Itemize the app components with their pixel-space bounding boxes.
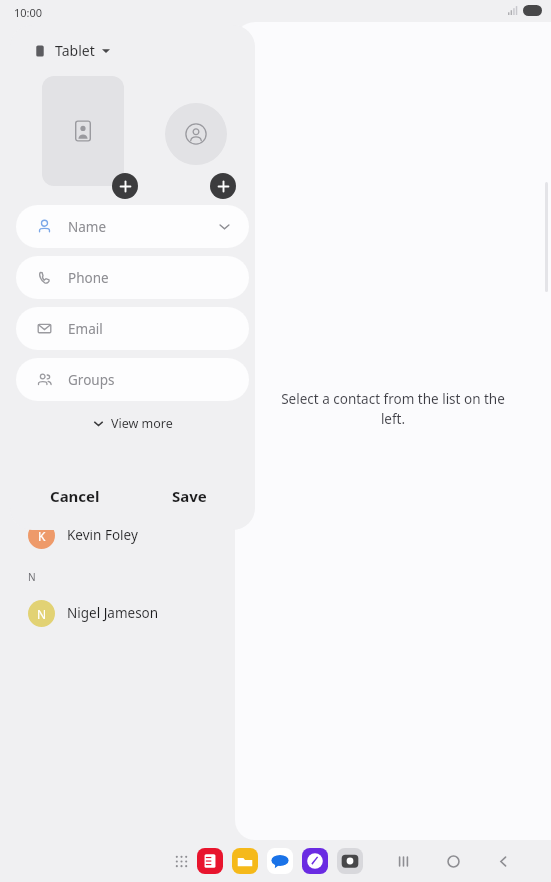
button[interactable]: Cancel <box>40 480 110 512</box>
button[interactable]: Add cover photo <box>112 173 138 199</box>
button[interactable]: Samsung Notes <box>197 848 223 874</box>
button[interactable]: View more <box>10 415 255 432</box>
button[interactable]: Internet <box>302 848 328 874</box>
button[interactable]: K <box>0 512 235 558</box>
button[interactable]: Add profile photo <box>210 173 236 199</box>
button[interactable]: Home <box>442 850 464 872</box>
button[interactable]: Save <box>162 480 217 512</box>
staticText: N <box>28 570 36 584</box>
button[interactable]: All apps <box>170 850 192 872</box>
button[interactable]: Tablet <box>32 37 112 64</box>
staticText: Phone <box>68 269 109 287</box>
staticText: Kevin Foley <box>67 526 138 544</box>
button[interactable]: Add cover photo <box>42 76 124 186</box>
staticText: Select a contact from the list on the le… <box>268 390 518 428</box>
button[interactable]: Back <box>492 850 514 872</box>
button[interactable]: Email <box>16 307 249 350</box>
button[interactable]: Camera <box>337 848 363 874</box>
button[interactable]: Name <box>16 205 249 248</box>
staticText: 10:00 <box>14 5 43 20</box>
button[interactable]: Messages <box>267 848 293 874</box>
staticText: Tablet <box>55 41 95 60</box>
button[interactable]: N <box>0 590 235 636</box>
staticText: K <box>38 528 46 544</box>
staticText: Groups <box>68 371 115 389</box>
staticText: N <box>37 606 47 622</box>
staticText: Nigel Jameson <box>67 604 159 622</box>
staticText: View more <box>111 415 173 432</box>
button[interactable]: Groups <box>16 358 249 401</box>
button[interactable]: Recents <box>392 850 414 872</box>
button[interactable]: Add profile photo <box>165 103 227 165</box>
staticText: Save <box>172 486 207 506</box>
staticText: Name <box>68 218 107 236</box>
staticText: Email <box>68 320 103 338</box>
button[interactable]: Phone <box>16 256 249 299</box>
button[interactable]: My Files <box>232 848 258 874</box>
staticText: Cancel <box>50 486 100 506</box>
